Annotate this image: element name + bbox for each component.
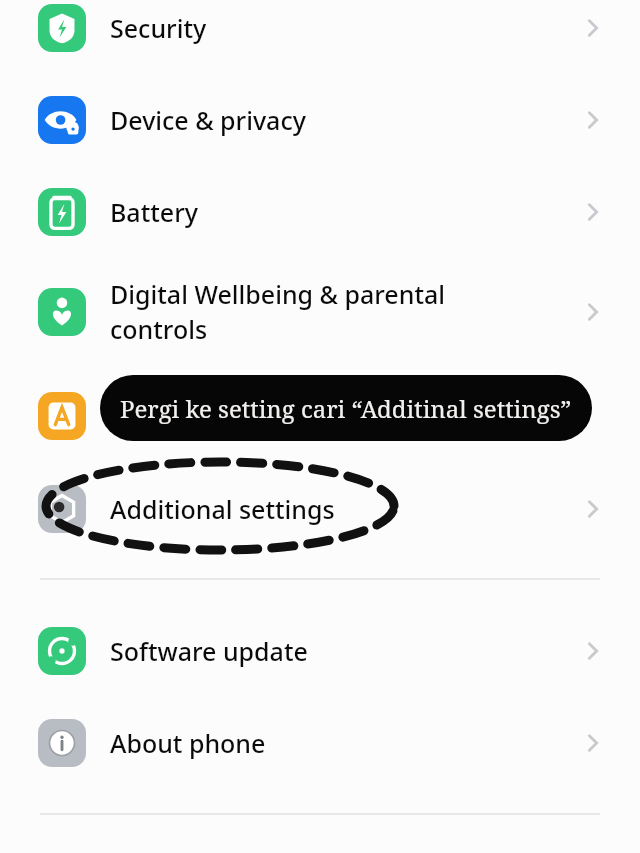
staticText: About phone xyxy=(110,726,266,760)
button[interactable]: Device & privacy xyxy=(0,82,640,158)
staticText: Battery xyxy=(110,195,198,229)
staticText: Security xyxy=(110,11,207,45)
button[interactable]: Additional settings xyxy=(0,471,640,547)
staticText: Software update xyxy=(110,634,308,668)
staticText: Pergi ke setting cari “Additinal setting… xyxy=(120,392,572,425)
button[interactable]: Battery xyxy=(0,174,640,250)
button[interactable]: Security xyxy=(0,0,640,66)
staticText: Device & privacy xyxy=(110,103,306,137)
button[interactable]: Accessibility xyxy=(0,378,640,454)
button[interactable]: About phone xyxy=(0,705,640,781)
button[interactable]: Pergi ke setting cari “Additinal setting… xyxy=(100,375,592,441)
button[interactable]: Digital Wellbeing & parental controls xyxy=(0,267,640,357)
button[interactable]: Software update xyxy=(0,613,640,689)
staticText: Digital Wellbeing & parental controls xyxy=(110,277,446,347)
staticText: Additional settings xyxy=(110,492,335,526)
